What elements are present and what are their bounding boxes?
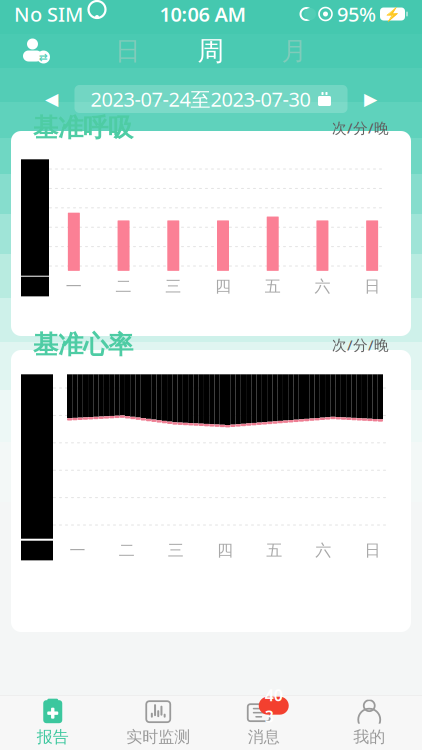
staticText: 三 [168,541,184,560]
staticText: ◀ [45,89,58,109]
staticText: 报告 [37,727,69,747]
staticText: 95% [337,1,376,27]
staticText: 次/分/晚 [332,118,389,137]
button[interactable]: 实时监测 [105,696,211,750]
staticText: 基准呼吸 [33,112,133,143]
staticText: 二 [119,541,135,560]
button[interactable]: 下一周 [347,84,393,114]
staticText: 日 [364,277,380,296]
staticText: 日 [115,35,140,66]
staticText: 5 [35,256,43,276]
button[interactable]: 报告 [0,696,105,750]
staticText: 五 [266,541,282,560]
staticText: 403 [265,684,283,727]
staticText: ⚡ [384,6,401,22]
staticText: 五 [265,277,281,296]
staticText: 周 [197,35,224,67]
staticText: 实时监测 [126,727,190,747]
button[interactable]: 我的 [316,696,422,750]
staticText: 日 [364,541,380,560]
staticText: 10:06 AM [159,1,246,27]
staticText: 四 [217,541,233,560]
staticText: 消息 [248,727,280,747]
staticText: 月 [282,35,307,66]
staticText: 三 [165,277,181,296]
button[interactable]: 日 [86,28,169,74]
staticText: 一 [70,541,86,560]
staticText: No SIM [14,1,83,27]
staticText: 我的 [353,727,385,747]
staticText: 四 [215,277,231,296]
staticText: ⇄ [39,51,48,63]
staticText: 30 [27,159,43,179]
button[interactable]: 周 [169,28,253,74]
staticText: 六 [315,541,331,560]
button[interactable]: 403 [211,696,316,750]
button[interactable]: 月 [253,28,336,74]
staticText: 基准心率 [33,329,133,360]
button[interactable]: 2023-07-24至2023-07-30 [74,85,347,113]
staticText: 2023-07-24至2023-07-30 [90,86,310,112]
staticText: 六 [314,277,330,296]
staticText: 一 [66,277,82,296]
staticText: ▶ [364,89,377,109]
staticText: 二 [116,277,132,296]
button[interactable]: 上一周 [28,84,74,114]
staticText: 次/分/晚 [332,335,389,354]
button[interactable]: 切换用户 [14,31,58,71]
